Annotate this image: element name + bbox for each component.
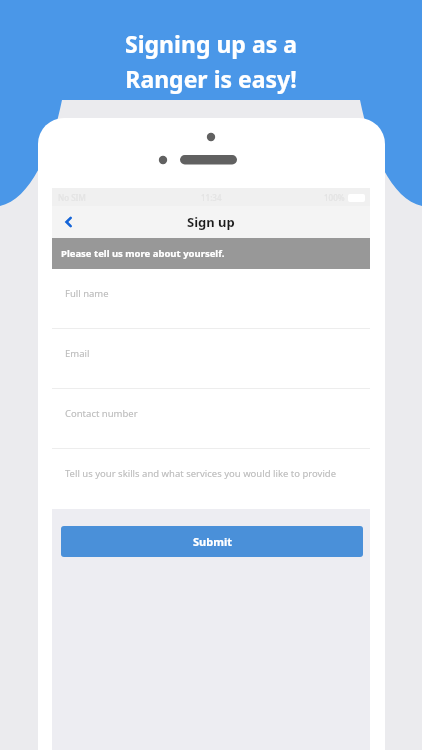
button[interactable]: Contact number [52, 389, 370, 448]
staticText: Contact number [65, 407, 138, 420]
button[interactable]: Tell us your skills and what services yo… [52, 449, 370, 508]
staticText: Submit [193, 534, 232, 549]
staticText: 11:34 [201, 192, 222, 203]
button[interactable]: Back [52, 206, 86, 238]
staticText: No SIM [58, 192, 86, 203]
staticText: Email [65, 347, 90, 360]
staticText: 100% [324, 192, 345, 203]
staticText: Full name [65, 287, 109, 300]
staticText: Tell us your skills and what services yo… [65, 467, 337, 480]
button[interactable]: Submit [61, 526, 363, 557]
staticText: Signing up as a [125, 28, 297, 59]
staticText: Please tell us more about yourself. [61, 247, 225, 260]
staticText: Ranger is easy! [125, 63, 297, 94]
button[interactable]: Email [52, 329, 370, 388]
button[interactable]: Full name [52, 269, 370, 328]
staticText: Sign up [187, 213, 235, 231]
